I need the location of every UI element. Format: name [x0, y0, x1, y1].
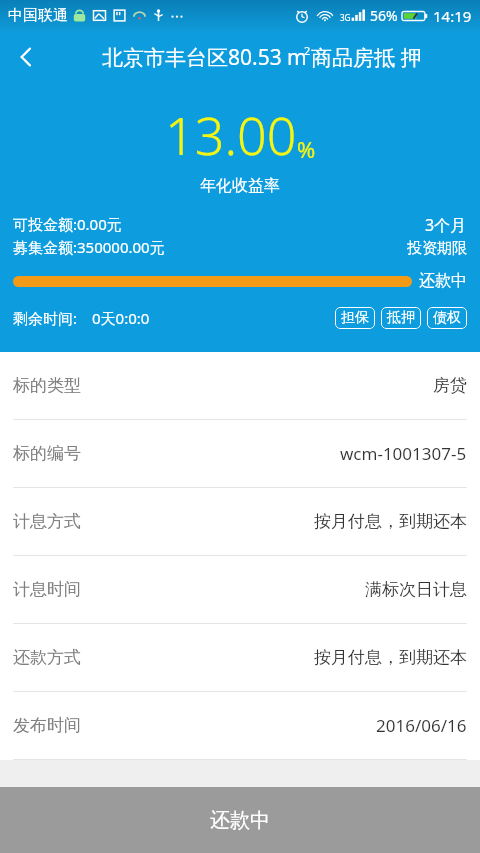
staticText: 商品房抵 押	[311, 43, 422, 72]
staticText: 募集金额:350000.00元	[13, 237, 165, 257]
staticText: 计息方式	[13, 511, 81, 532]
button[interactable]: 计息时间	[0, 556, 480, 623]
staticText: 年化收益率	[0, 176, 480, 196]
staticText: %	[297, 134, 316, 164]
staticText: 发布时间	[13, 715, 81, 736]
staticText: 还款中	[210, 808, 270, 833]
staticText: 标的编号	[13, 443, 81, 464]
button[interactable]: Back	[0, 31, 52, 83]
button[interactable]: 担保	[335, 307, 375, 329]
staticText: 标的类型	[13, 375, 81, 396]
staticText: 房贷	[433, 375, 467, 396]
staticText: 还款中	[419, 271, 467, 291]
staticText: m	[287, 43, 307, 72]
button[interactable]: 还款方式	[0, 624, 480, 691]
staticText: 13.00	[165, 99, 297, 170]
staticText: 满标次日计息	[365, 579, 467, 600]
staticText: 2	[304, 43, 311, 58]
staticText: 56%	[370, 6, 398, 25]
staticText: 计息时间	[13, 579, 81, 600]
staticText: 债权	[433, 309, 461, 327]
button[interactable]: 计息方式	[0, 488, 480, 555]
staticText: 3G	[340, 12, 351, 23]
staticText: 投资期限	[407, 239, 467, 258]
staticText: 3个月	[425, 214, 467, 236]
button[interactable]: 标的编号	[0, 420, 480, 487]
staticText: 还款方式	[13, 647, 81, 668]
staticText: 北京市丰台区80.53	[102, 43, 282, 72]
button[interactable]: 发布时间	[0, 692, 480, 759]
staticText: 2016/06/16	[376, 714, 467, 737]
staticText: 14:19	[433, 6, 472, 26]
staticText: wcm-1001307-5	[340, 442, 467, 465]
button[interactable]: 抵押	[381, 307, 421, 329]
staticText: 中国联通	[8, 6, 68, 25]
staticText: 0天0:0:0	[92, 308, 150, 328]
button[interactable]: 债权	[427, 307, 467, 329]
button[interactable]: 标的类型	[0, 352, 480, 419]
button[interactable]: 还款中	[0, 787, 480, 853]
staticText: 可投金额:0.00元	[13, 214, 122, 234]
staticText: 担保	[341, 309, 369, 327]
staticText: 剩余时间:	[13, 308, 78, 328]
staticText: 按月付息，到期还本	[314, 647, 467, 668]
staticText: 抵押	[387, 309, 415, 327]
staticText: 按月付息，到期还本	[314, 511, 467, 532]
